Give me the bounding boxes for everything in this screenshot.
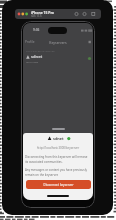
staticText: Any messages or content you have previou… <box>25 168 87 177</box>
staticText: tap to view <box>26 60 39 63</box>
staticText: sdnet <box>53 136 64 141</box>
staticText: Disconnect keyserver <box>26 183 91 187</box>
staticText: http://localhost:3000/keyserver <box>23 146 93 150</box>
staticText: iPhone 15 Pro <box>31 10 54 15</box>
button[interactable]: Disconnect keyserver <box>26 180 91 189</box>
staticText: sdnet <box>31 54 43 59</box>
staticText: Keyservers <box>23 40 93 45</box>
button[interactable] <box>23 52 93 63</box>
staticText: Disconnecting from this keyserver will r… <box>25 155 88 164</box>
staticText: iOS 17.5 <box>31 14 42 18</box>
button[interactable]: Profile <box>24 39 38 46</box>
staticText: CONNECTED KEYSERVER <box>26 49 55 52</box>
staticText: 9:36 <box>33 28 40 32</box>
button[interactable]: iPhone 15 Pro <box>15 9 101 19</box>
staticText: Profile <box>25 40 35 44</box>
